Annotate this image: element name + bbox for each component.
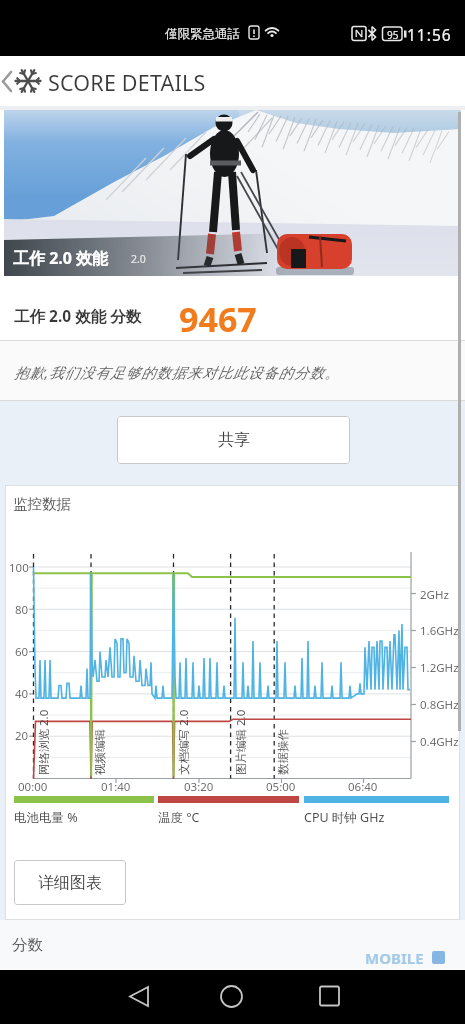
staticText: 00:00	[18, 779, 48, 795]
staticText: 01:40	[101, 779, 131, 795]
staticText: 文档编写 2.0	[176, 709, 190, 775]
staticText: 0.8GHz	[420, 697, 459, 713]
staticText: 详细图表	[38, 873, 102, 893]
button[interactable]	[100, 970, 190, 1024]
staticText: 温度 °C	[158, 809, 200, 826]
staticText: 工作 2.0 效能	[13, 247, 109, 269]
staticText: 9467	[179, 296, 257, 342]
staticText: 0.4GHz	[420, 734, 459, 750]
staticText: 100	[9, 560, 29, 576]
staticText: 06:40	[348, 779, 378, 795]
button[interactable]	[0, 56, 220, 106]
staticText: 网络浏览 2.0	[36, 709, 50, 775]
staticText: 80	[15, 602, 29, 618]
button[interactable]: 共享	[117, 416, 350, 464]
staticText: 40	[15, 686, 29, 702]
button[interactable]: 详细图表	[14, 860, 126, 905]
staticText: 2GHz	[420, 587, 449, 603]
button[interactable]	[280, 970, 370, 1024]
staticText: 11:56	[407, 24, 452, 45]
button[interactable]	[190, 970, 280, 1024]
staticText: 僅限緊急通話	[165, 26, 240, 42]
staticText: 03:20	[184, 779, 214, 795]
staticText: 视频编辑	[93, 729, 107, 775]
staticText: SCORE DETAILS	[48, 68, 206, 97]
staticText: 20	[15, 728, 29, 744]
staticText: 共享	[218, 430, 250, 450]
staticText: 60	[15, 644, 29, 660]
staticText: 工作 2.0 效能 分数	[14, 305, 142, 326]
staticText: 1.6GHz	[420, 623, 459, 639]
staticText: 监控数据	[13, 495, 71, 513]
staticText: 图片编辑 2.0	[233, 709, 247, 775]
staticText: CPU 时钟 GHz	[304, 809, 385, 826]
staticText: 1.2GHz	[420, 660, 459, 676]
staticText: 电池电量 %	[14, 809, 78, 826]
staticText: 2.0	[131, 252, 146, 266]
staticText: 分数	[12, 935, 43, 955]
staticText: 05:00	[266, 779, 296, 795]
staticText: 95	[387, 28, 399, 42]
staticText: 抱歉,我们没有足够的数据来对比此设备的分数。	[14, 362, 340, 382]
staticText: MOBILE	[365, 948, 424, 968]
staticText: 数据操作	[276, 729, 290, 775]
